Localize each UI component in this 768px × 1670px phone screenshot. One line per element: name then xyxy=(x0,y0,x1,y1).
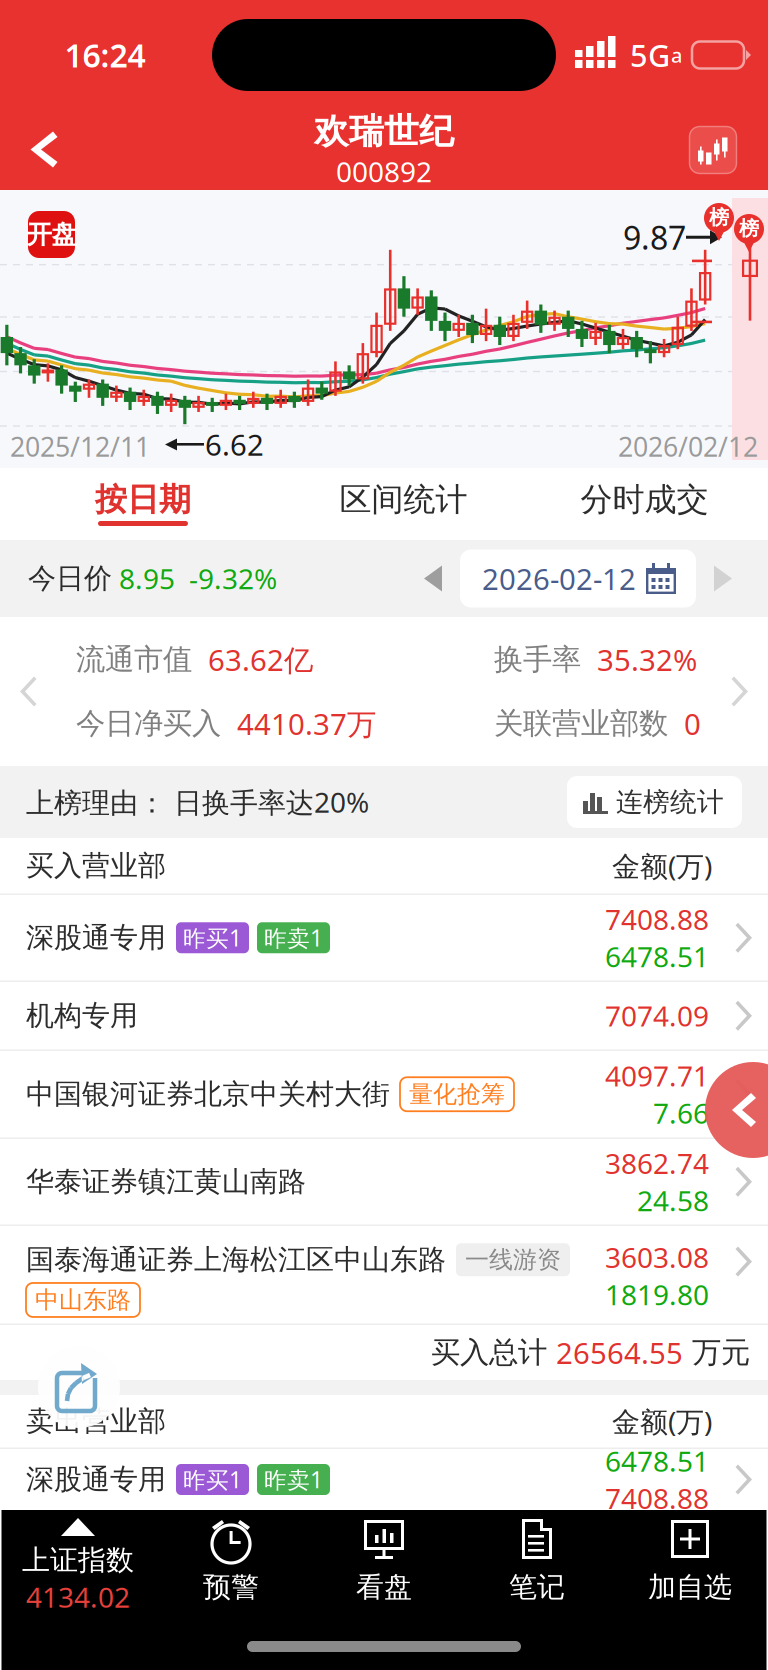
button[interactable]: 预警 xyxy=(154,1510,307,1626)
staticText: 5G xyxy=(630,35,670,75)
button[interactable]: 华泰证券镇江黄山南路 xyxy=(0,1139,768,1224)
button[interactable]: 上证指数 xyxy=(1,1510,154,1626)
button[interactable]: Share xyxy=(38,1346,120,1428)
staticText: 连榜统计 xyxy=(616,786,724,818)
staticText: 7.66 xyxy=(653,1094,709,1131)
staticText: 买入总计 xyxy=(431,1334,556,1370)
staticText: 63.62亿 xyxy=(192,640,313,679)
staticText: 7408.88 xyxy=(605,1479,709,1517)
button[interactable]: Previous day xyxy=(406,558,460,598)
button[interactable]: 国泰海通证券上海松江区中山东路 xyxy=(0,1226,768,1323)
staticText: 区间统计 xyxy=(339,480,467,519)
staticText: 35.32% xyxy=(581,640,697,679)
staticText: 买入营业部 xyxy=(26,849,166,883)
staticText: 换手率 xyxy=(494,641,581,677)
staticText: 今日价 xyxy=(28,561,112,596)
staticText: 今日净买入 xyxy=(76,705,221,741)
staticText: 上证指数 xyxy=(22,1543,134,1577)
staticText: 8.95 xyxy=(112,560,175,597)
staticText: 2026/02/12 xyxy=(618,429,758,464)
staticText: 6478.51 xyxy=(605,1442,709,1479)
staticText: 关联营业部数 xyxy=(494,705,668,741)
button[interactable]: 机构专用 xyxy=(0,982,768,1049)
staticText: 1819.80 xyxy=(605,1276,709,1313)
staticText: 6478.51 xyxy=(605,938,709,975)
button[interactable]: 深股通专用 xyxy=(0,895,768,980)
staticText: 榜 xyxy=(739,216,759,241)
staticText: 万元 xyxy=(683,1334,750,1370)
staticText: 4410.37万 xyxy=(221,704,376,743)
button[interactable]: 深股通专用 xyxy=(0,1449,768,1510)
button[interactable]: 区间统计 xyxy=(286,468,521,540)
staticText: 26564.55 xyxy=(556,1333,683,1372)
staticText: 16:24 xyxy=(64,34,145,76)
staticText: 金额(万) xyxy=(612,1403,712,1440)
staticText: 3603.08 xyxy=(605,1239,709,1276)
staticText: 4097.71 xyxy=(605,1057,709,1094)
button[interactable]: 按日期 xyxy=(0,468,286,540)
staticText: 按日期 xyxy=(95,480,191,519)
staticText: 0 xyxy=(668,704,701,743)
staticText: 24.58 xyxy=(637,1182,709,1219)
staticText: 中山东路 xyxy=(35,1285,131,1315)
button[interactable]: 笔记 xyxy=(460,1510,613,1626)
button[interactable]: Next day xyxy=(696,558,750,598)
staticText: 7074.09 xyxy=(605,997,709,1034)
staticText: 3862.74 xyxy=(605,1145,709,1182)
staticText: 国泰海通证券上海松江区中山东路 xyxy=(26,1243,446,1277)
button[interactable]: 中国银河证券北京中关村大街 xyxy=(0,1051,768,1137)
staticText: 分时成交 xyxy=(580,480,708,519)
staticText: 000892 xyxy=(336,153,432,190)
staticText: 流通市值 xyxy=(76,641,192,677)
staticText: 金额(万) xyxy=(612,847,712,884)
button[interactable]: 连榜统计 xyxy=(567,776,742,828)
staticText: 欢瑞世纪 xyxy=(314,110,454,153)
staticText: 上榜理由： 日换手率达20% xyxy=(26,783,369,821)
staticText: 9.87 xyxy=(623,216,686,258)
staticText: 一线游资 xyxy=(465,1245,561,1274)
staticText: 看盘 xyxy=(356,1570,412,1604)
button[interactable]: 分时成交 xyxy=(521,468,768,540)
button[interactable]: Collapse panel xyxy=(715,1062,768,1158)
staticText: 机构专用 xyxy=(26,999,138,1033)
staticText: 深股通专用 xyxy=(26,921,166,955)
staticText: 开盘 xyxy=(26,219,76,250)
button[interactable]: Back xyxy=(0,110,84,190)
button[interactable]: 看盘 xyxy=(307,1510,460,1626)
staticText: 6.62 xyxy=(205,425,264,464)
staticText: 预警 xyxy=(203,1570,259,1604)
staticText: 卖出营业部 xyxy=(26,1404,166,1438)
staticText: 昨卖1 xyxy=(264,923,323,953)
staticText: 昨买1 xyxy=(183,1464,242,1494)
staticText: 2026-02-12 xyxy=(482,559,636,598)
button[interactable]: 2026-02-12 xyxy=(460,549,696,607)
staticText: -9.32% xyxy=(175,560,277,597)
button[interactable]: 加自选 xyxy=(613,1510,766,1626)
staticText: 深股通专用 xyxy=(26,1462,166,1497)
staticText: 昨买1 xyxy=(183,923,242,953)
staticText: 量化抢筹 xyxy=(409,1079,505,1109)
button[interactable]: K-line chart xyxy=(689,126,736,173)
staticText: 昨卖1 xyxy=(264,1464,323,1494)
staticText: a xyxy=(671,42,682,68)
staticText: 中国银河证券北京中关村大街 xyxy=(26,1077,390,1111)
staticText: 7408.88 xyxy=(605,901,709,938)
staticText: 华泰证券镇江黄山南路 xyxy=(26,1165,306,1199)
staticText: 2025/12/11 xyxy=(10,429,150,464)
staticText: 加自选 xyxy=(648,1570,732,1604)
staticText: 榜 xyxy=(709,205,729,230)
staticText: 笔记 xyxy=(509,1570,565,1604)
staticText: 4134.02 xyxy=(26,1578,130,1616)
